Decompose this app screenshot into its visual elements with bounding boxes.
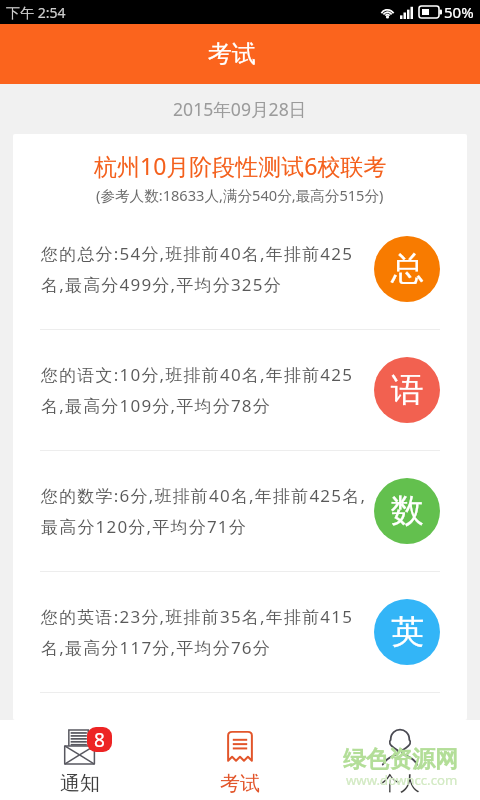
staticText: 数 (391, 490, 424, 532)
other: Notifications (62, 729, 98, 765)
staticText: 总 (391, 248, 424, 290)
button[interactable]: 您的英语:23分,班排前35名,年排前415名,最高分117分,平均分76分 (13, 572, 467, 692)
staticText: 考试 (208, 39, 256, 69)
staticText: 杭州10月阶段性测试6校联考 (94, 150, 387, 181)
staticText: 您的总分:54分,班排前40名,年排前425名,最高分499分,平均分325分 (41, 242, 367, 296)
staticText: 50% (444, 2, 474, 22)
staticText: (参考人数:18633人,满分540分,最高分515分) (96, 185, 384, 205)
button[interactable]: Exams (160, 720, 320, 800)
staticText: 语 (391, 369, 424, 411)
staticText: 考试 (220, 771, 260, 796)
staticText: 您的数学:6分,班排前40名,年排前425名,最高分120分,平均分71分 (41, 484, 367, 538)
button[interactable]: Notifications (0, 720, 160, 800)
other: Profile (382, 729, 418, 765)
staticText: 您的语文:10分,班排前40名,年排前425名,最高分109分,平均分78分 (41, 363, 367, 417)
staticText: 绿色资源网 (343, 745, 458, 774)
staticText: 下午 2:54 (6, 3, 66, 22)
button[interactable]: 您的语文:10分,班排前40名,年排前425名,最高分109分,平均分78分 (13, 330, 467, 450)
staticText: 英 (391, 611, 424, 653)
staticText: 个人 (380, 771, 420, 796)
button[interactable]: 您的数学:6分,班排前40名,年排前425名,最高分120分,平均分71分 (13, 451, 467, 571)
staticText: 通知 (60, 771, 100, 796)
button[interactable]: Profile (320, 720, 480, 800)
staticText: 8 (94, 727, 105, 752)
button[interactable]: 您的总分:54分,班排前40名,年排前425名,最高分499分,平均分325分 (13, 209, 467, 329)
staticText: 2015年09月28日 (173, 97, 307, 121)
other: Exams (222, 729, 258, 765)
staticText: 您的英语:23分,班排前35名,年排前415名,最高分117分,平均分76分 (41, 605, 367, 659)
staticText: www.downcc.com (346, 771, 458, 789)
